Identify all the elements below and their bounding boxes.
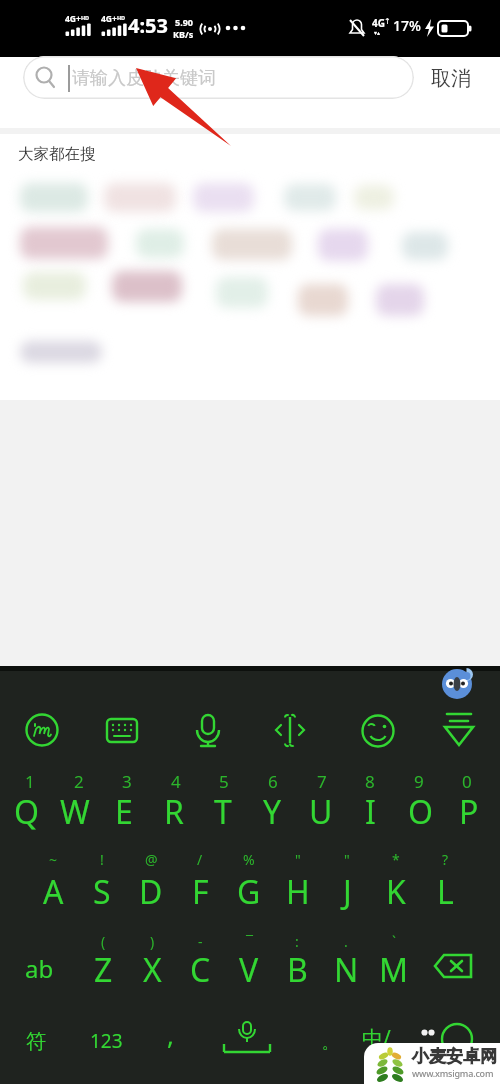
staticText: H [286,870,310,914]
staticText: 5 [219,770,229,793]
staticText: ~ [49,850,58,869]
button[interactable]: L [421,867,469,917]
button[interactable] [216,277,268,308]
staticText: 4G [372,16,385,30]
button[interactable]: 符 [10,1017,62,1065]
button[interactable] [440,667,474,701]
button[interactable]: N [322,945,370,995]
staticText: " [295,850,301,869]
button[interactable]: D [127,867,175,917]
button[interactable]: E [100,787,148,837]
button[interactable]: Q [2,787,50,837]
button[interactable]: Z [79,945,127,995]
staticText: J [343,870,352,914]
button[interactable]: C [176,945,224,995]
button[interactable]: B [273,945,321,995]
staticText: * [392,850,400,869]
staticText: T [214,790,232,834]
staticText: . [344,932,348,951]
button[interactable] [186,710,230,754]
staticText: C [190,948,211,992]
button[interactable]: 。 [312,1021,348,1065]
button[interactable]: 取消 [416,56,486,100]
button[interactable] [20,341,102,363]
staticText: Z [94,948,113,992]
button[interactable] [104,183,176,212]
button[interactable] [20,183,88,212]
button[interactable] [20,227,108,259]
staticText: Q [14,790,39,834]
button[interactable] [193,183,254,212]
staticText: V [239,948,259,992]
staticText: 4:53 [128,12,168,39]
button[interactable]: H [274,867,322,917]
staticText: 4 [171,770,181,793]
staticText: U [309,790,333,834]
staticText: ab [25,952,54,985]
button[interactable]: X [128,945,176,995]
button[interactable] [136,229,184,258]
button[interactable]: Y [248,787,296,837]
button[interactable]: T [199,787,247,837]
button[interactable] [318,229,368,261]
button[interactable] [402,232,448,260]
staticText: 符 [26,1029,46,1054]
staticText: 0 [462,770,472,793]
staticText: 7 [317,770,327,793]
button[interactable]: P [445,787,493,837]
staticText: @ [145,850,158,869]
button[interactable]: ab [11,943,67,993]
staticText: www.xmsigma.com [412,1067,494,1079]
staticText: D [139,870,163,914]
button[interactable] [354,185,394,210]
button[interactable] [436,710,480,754]
button[interactable] [210,1016,286,1068]
staticText: ‾ [246,932,253,951]
button[interactable]: , [150,1010,190,1058]
button[interactable]: V [225,945,273,995]
button[interactable]: 请输入皮肤关键词 [23,56,414,99]
staticText: / [197,850,203,869]
staticText: 取消 [431,66,471,91]
button[interactable] [284,184,336,211]
button[interactable] [353,710,397,754]
staticText: M [379,948,409,992]
button[interactable] [212,229,292,260]
staticText: ! [100,850,104,869]
staticText: ( [101,932,106,951]
button[interactable] [103,710,147,754]
button[interactable] [20,710,64,754]
button[interactable] [434,1016,480,1062]
staticText: P [459,790,479,834]
button[interactable]: A [29,867,77,917]
button[interactable]: W [51,787,99,837]
button[interactable]: F [176,867,224,917]
button[interactable]: 123 [78,1017,134,1065]
staticText: K [386,870,406,914]
button[interactable]: U [297,787,345,837]
button[interactable]: M [370,945,418,995]
button[interactable]: G [225,867,273,917]
button[interactable]: K [372,867,420,917]
button[interactable]: R [150,787,198,837]
staticText: 9 [414,770,424,793]
button[interactable] [376,284,424,316]
button[interactable]: S [78,867,126,917]
button[interactable]: I [346,787,394,837]
button[interactable] [112,271,182,302]
button[interactable] [270,710,314,754]
staticText: 123 [90,1028,123,1054]
staticText: KB/s [173,28,194,40]
button[interactable]: O [396,787,444,837]
staticText: ↑ [384,17,391,26]
staticText: 8 [365,770,375,793]
staticText: 中/ [362,1024,391,1053]
staticText: Y [263,790,282,834]
staticText: O [408,790,433,834]
button[interactable]: 中/ [344,1014,408,1062]
staticText: % [243,850,255,869]
button[interactable] [23,272,86,300]
button[interactable]: J [323,867,371,917]
button[interactable] [425,944,481,988]
button[interactable] [298,284,348,316]
